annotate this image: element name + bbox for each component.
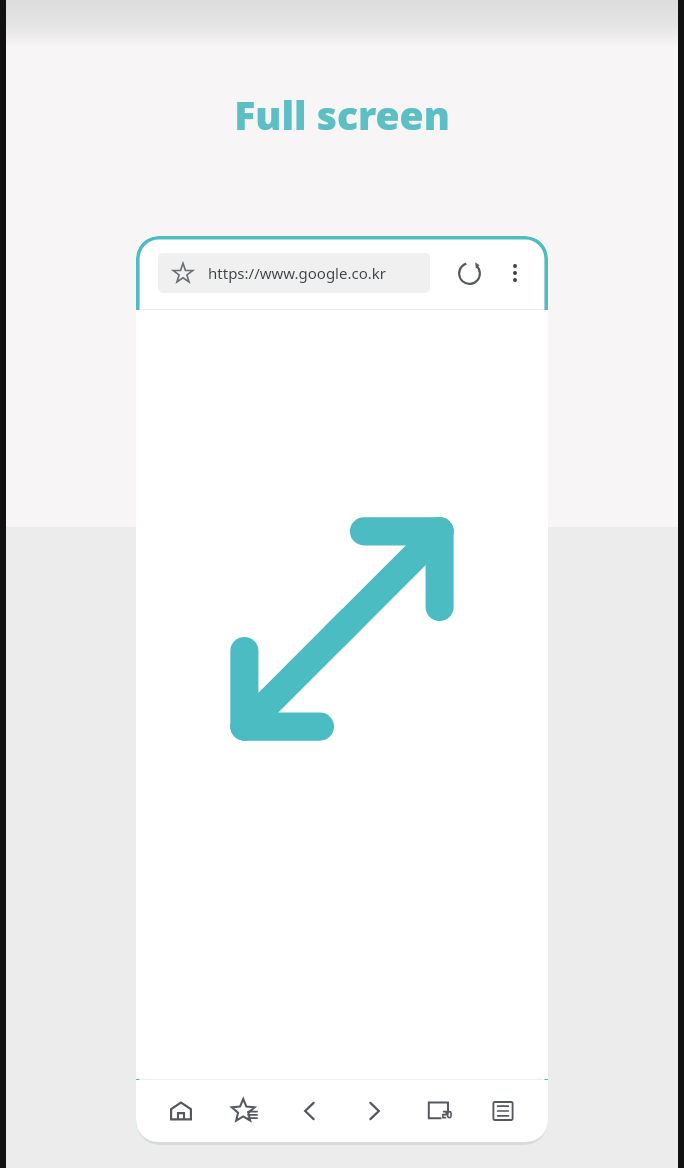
staticText: https://www.google.co.kr bbox=[208, 263, 386, 283]
button[interactable]: Full screen bbox=[220, 507, 464, 751]
button[interactable]: Forward bbox=[351, 1088, 397, 1134]
button[interactable]: Back bbox=[287, 1088, 333, 1134]
button[interactable]: Menu bbox=[480, 1088, 526, 1134]
button[interactable]: Bookmarks bbox=[222, 1088, 268, 1134]
button[interactable]: Tabs, 20 open bbox=[416, 1088, 462, 1134]
staticText: Full screen bbox=[234, 88, 450, 141]
button[interactable]: More options bbox=[496, 254, 534, 292]
button[interactable]: Refresh bbox=[448, 252, 490, 294]
button[interactable]: Home bbox=[158, 1088, 204, 1134]
button[interactable]: https://www.google.co.kr bbox=[158, 253, 430, 293]
